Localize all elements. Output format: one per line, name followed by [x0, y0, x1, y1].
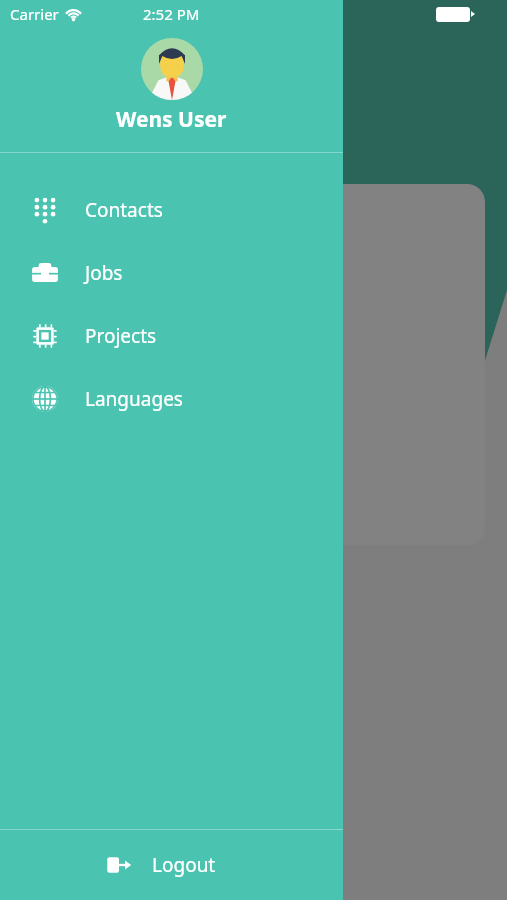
other: Logout [106, 852, 132, 878]
button[interactable]: ed [196, 104, 322, 148]
button[interactable]: ng... [58, 184, 485, 545]
staticText: Carrier [10, 4, 59, 24]
staticText: Projects [85, 323, 157, 349]
staticText: Languages [85, 386, 183, 412]
button[interactable]: Jobs [0, 253, 343, 293]
other: Contacts [30, 195, 60, 225]
staticText: Contacts [85, 197, 163, 223]
staticText: Jobs [85, 260, 123, 286]
staticText: 2:52 PM [143, 4, 200, 24]
button[interactable]: Logout [0, 830, 343, 900]
other: Jobs [30, 258, 60, 288]
staticText: ed [198, 115, 219, 138]
other: Languages [30, 384, 60, 414]
staticText: Wens User [116, 105, 227, 134]
other: Projects [30, 321, 60, 351]
staticText: Logout [152, 852, 216, 878]
button[interactable]: Projects [0, 316, 343, 356]
button[interactable]: Languages [0, 379, 343, 419]
button[interactable]: Contacts [0, 190, 343, 230]
